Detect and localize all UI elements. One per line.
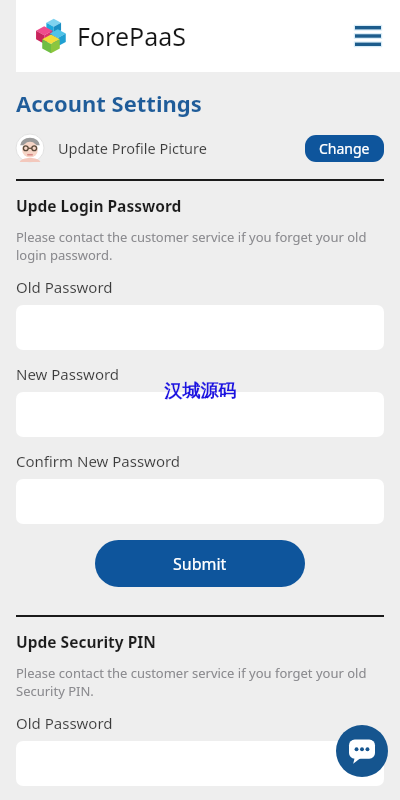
staticText: Update Profile Picture xyxy=(58,138,207,158)
staticText: 汉城源码 xyxy=(164,380,236,403)
staticText: Confirm New Password xyxy=(16,451,181,471)
button[interactable]: Change xyxy=(305,135,384,162)
staticText: Please contact the customer service if y… xyxy=(16,228,382,264)
button[interactable]: Open navigation menu xyxy=(344,12,392,60)
button[interactable]: Submit xyxy=(95,540,305,587)
staticText: Upde Login Password xyxy=(16,195,182,216)
staticText: Upde Security PIN xyxy=(16,631,156,652)
button[interactable]: Password input field xyxy=(16,392,384,437)
button[interactable]: Chat support xyxy=(336,725,388,777)
staticText: ForePaaS xyxy=(77,19,186,53)
staticText: Account Settings xyxy=(16,88,202,118)
staticText: Old Password xyxy=(16,277,113,297)
button[interactable]: Password input field xyxy=(16,741,384,786)
staticText: Change xyxy=(319,139,370,158)
staticText: Submit xyxy=(173,553,227,575)
staticText: Please contact the customer service if y… xyxy=(16,664,382,700)
staticText: Old Password xyxy=(16,713,113,733)
staticText: New Password xyxy=(16,364,120,384)
